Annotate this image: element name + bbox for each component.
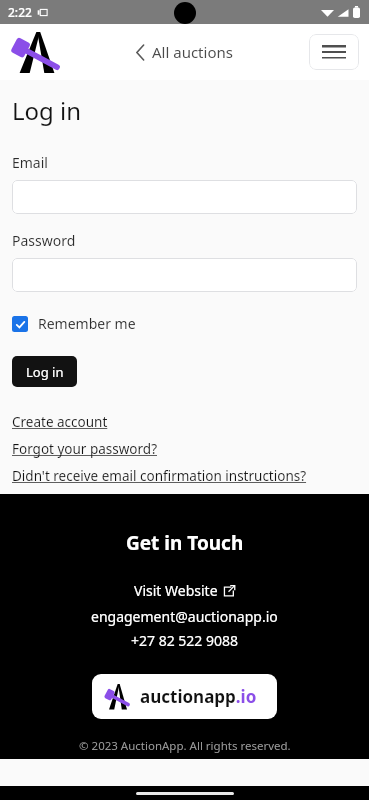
staticText: © 2023 AuctionApp. All rights reserved.: [79, 738, 291, 754]
staticText: Get in Touch: [126, 530, 244, 556]
button[interactable]: Visit Website: [130, 579, 239, 602]
button[interactable]: engagement@auctionapp.io: [91, 607, 278, 626]
button[interactable]: Didn't receive email confirmation instru…: [12, 467, 307, 485]
staticText: Log in: [26, 363, 64, 381]
button[interactable]: [12, 180, 357, 214]
button[interactable]: Forgot your password?: [12, 440, 158, 458]
staticText: Password: [12, 231, 76, 250]
staticText: Log in: [12, 94, 82, 127]
staticText: Email: [12, 153, 48, 172]
button[interactable]: auctionapp.io: [92, 674, 277, 719]
button[interactable]: +27 82 522 9088: [131, 631, 239, 650]
staticText: Create account: [12, 413, 108, 431]
staticText: All auctions: [152, 42, 233, 62]
button[interactable]: AuctionApp home: [8, 27, 66, 77]
staticText: 2:22: [8, 4, 32, 20]
staticText: Forgot your password?: [12, 440, 158, 458]
staticText: Remember me: [38, 314, 136, 333]
staticText: Didn't receive email confirmation instru…: [12, 467, 307, 485]
staticText: +27 82 522 9088: [131, 631, 239, 650]
staticText: auctionapp.io: [140, 685, 257, 708]
staticText: Visit Website: [134, 581, 218, 600]
button[interactable]: Log in: [12, 356, 77, 387]
staticText: engagement@auctionapp.io: [91, 607, 278, 626]
button[interactable]: Open menu: [309, 34, 359, 70]
button[interactable]: Create account: [12, 413, 108, 431]
button[interactable]: [12, 258, 357, 292]
button[interactable]: All auctions: [126, 36, 243, 68]
button[interactable]: Remember me: [12, 312, 136, 335]
